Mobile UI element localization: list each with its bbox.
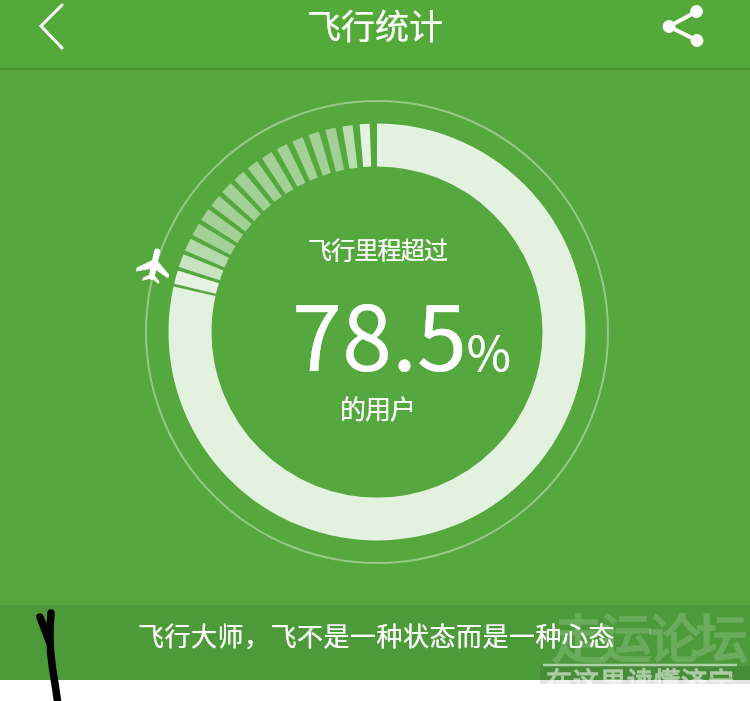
staticText: 飞行统计 [307,0,443,49]
staticText: 飞行里程超过 [308,231,448,266]
staticText: 在这里读懂济宁 [546,661,736,699]
staticText: 飞行大师，飞不是一种状态而是一种心态 [138,616,616,654]
button[interactable] [682,0,750,68]
staticText: 的用户 [340,389,416,427]
button[interactable] [0,0,68,68]
staticText: 78.5% [292,267,512,397]
staticText: 走运论坛 [552,598,745,673]
